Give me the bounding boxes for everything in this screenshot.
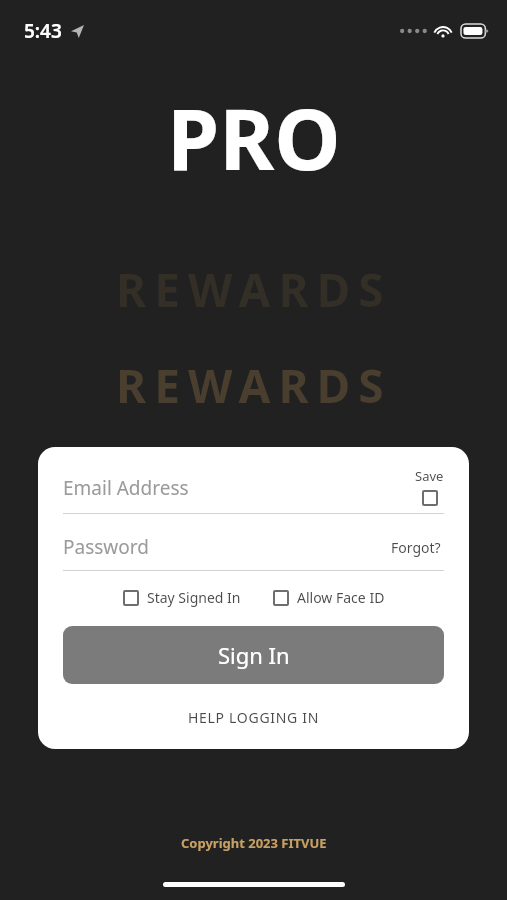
button[interactable]: Password (63, 534, 388, 560)
button[interactable]: Allow Face ID (273, 588, 385, 607)
staticText: PRO (167, 80, 341, 194)
staticText: REWARDS (116, 450, 392, 513)
staticText: REWARDS (116, 258, 392, 321)
button[interactable]: Email Address (63, 475, 415, 506)
staticText: Copyright 2023 FITVUE (181, 834, 327, 852)
staticText: Stay Signed In (147, 588, 241, 607)
button[interactable]: Stay Signed In (123, 588, 241, 607)
staticText: HELP LOGGING IN (188, 708, 320, 727)
staticText: Forgot? (391, 538, 441, 557)
staticText: Allow Face ID (297, 588, 385, 607)
staticText: Save (415, 467, 444, 485)
staticText: Sign In (218, 640, 290, 670)
button[interactable]: HELP LOGGING IN (63, 704, 444, 731)
staticText: Email Address (63, 475, 189, 501)
button[interactable]: Forgot? (388, 535, 444, 560)
staticText: REWARDS (116, 354, 392, 417)
button[interactable]: Sign In (63, 626, 444, 684)
button[interactable]: Save email address (415, 467, 444, 506)
staticText: Password (63, 534, 149, 560)
staticText: 5:43 (24, 18, 62, 44)
